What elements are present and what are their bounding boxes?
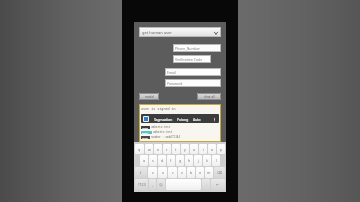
button[interactable]: model bbox=[139, 93, 159, 100]
staticText: g bbox=[179, 158, 182, 163]
staticText: w bbox=[148, 147, 151, 152]
button[interactable]: z bbox=[148, 167, 157, 178]
button[interactable]: h bbox=[185, 155, 193, 166]
button[interactable]: . bbox=[202, 179, 210, 190]
button[interactable]: ?123 bbox=[135, 179, 148, 190]
staticText: c bbox=[172, 170, 174, 175]
button[interactable]: Shift bbox=[135, 167, 147, 178]
staticText: Potong bbox=[177, 117, 189, 121]
button[interactable]: Potong bbox=[175, 116, 191, 122]
button[interactable]: clear all bbox=[197, 93, 221, 100]
staticText: e bbox=[157, 147, 160, 152]
button[interactable]: Inspect element bbox=[143, 116, 149, 122]
button[interactable]: q bbox=[135, 144, 144, 154]
staticText: Email bbox=[167, 70, 176, 75]
button[interactable]: get human user bbox=[139, 27, 221, 37]
staticText: z bbox=[152, 170, 154, 175]
staticText: clear all bbox=[204, 95, 215, 99]
staticText: umberto.test bbox=[151, 125, 171, 129]
button[interactable]: y bbox=[181, 144, 189, 154]
button[interactable]: p bbox=[217, 144, 225, 154]
staticText: y bbox=[184, 147, 186, 152]
staticText: umberto.test bbox=[153, 130, 173, 134]
staticText: Phone bbox=[142, 136, 149, 139]
staticText: , bbox=[152, 182, 153, 187]
staticText: ☺ bbox=[159, 183, 163, 187]
button[interactable]: c bbox=[168, 167, 177, 178]
button[interactable]: , bbox=[149, 179, 156, 190]
button[interactable]: u bbox=[190, 144, 198, 154]
staticText: ⌫ bbox=[217, 171, 223, 175]
button[interactable]: i bbox=[199, 144, 207, 154]
staticText: v bbox=[181, 170, 183, 175]
staticText: u bbox=[193, 147, 196, 152]
button[interactable]: n bbox=[196, 167, 204, 178]
button[interactable]: e bbox=[154, 144, 162, 154]
staticText: f bbox=[170, 158, 172, 163]
staticText: Verification Code bbox=[175, 57, 203, 62]
staticText: m bbox=[207, 170, 211, 175]
button[interactable]: m bbox=[205, 167, 213, 178]
button[interactable]: Emoji bbox=[157, 179, 165, 190]
staticText: d bbox=[161, 158, 164, 163]
staticText: h bbox=[188, 158, 191, 163]
button[interactable]: f bbox=[167, 155, 175, 166]
button[interactable]: g bbox=[176, 155, 184, 166]
staticText: j bbox=[198, 158, 199, 163]
staticText: k bbox=[206, 158, 208, 163]
button[interactable]: Backspace bbox=[214, 167, 225, 178]
staticText: x bbox=[162, 170, 164, 175]
staticText: p bbox=[220, 147, 223, 152]
staticText: b bbox=[190, 170, 193, 175]
staticText: get human user bbox=[142, 30, 172, 35]
button[interactable]: Space bbox=[166, 179, 201, 190]
staticText: n bbox=[199, 170, 202, 175]
button[interactable]: l bbox=[212, 155, 220, 166]
staticText: Phone_Number bbox=[175, 46, 200, 51]
staticText: Tagmaakan bbox=[154, 117, 173, 121]
button[interactable]: Verification Code bbox=[173, 55, 211, 63]
staticText: model bbox=[145, 95, 154, 99]
button[interactable]: j bbox=[194, 155, 202, 166]
staticText: i bbox=[203, 147, 204, 152]
button[interactable]: b bbox=[187, 167, 195, 178]
staticText: q bbox=[138, 147, 141, 152]
staticText: a bbox=[143, 158, 146, 163]
staticText: number : umb471344 bbox=[151, 135, 181, 139]
staticText: ↵ bbox=[216, 183, 220, 187]
staticText: user is signed in bbox=[141, 106, 176, 111]
staticText: Auto bbox=[193, 117, 201, 121]
staticText: o bbox=[211, 147, 214, 152]
button[interactable]: More options bbox=[211, 116, 217, 122]
staticText: ?123 bbox=[138, 182, 146, 187]
staticText: l bbox=[216, 158, 217, 163]
button[interactable]: Enter bbox=[211, 179, 225, 190]
button[interactable]: Password bbox=[165, 79, 221, 87]
button[interactable]: k bbox=[203, 155, 211, 166]
button[interactable]: Email bbox=[165, 68, 221, 76]
button[interactable]: Phone_Number bbox=[173, 44, 221, 52]
button[interactable]: o bbox=[208, 144, 216, 154]
button[interactable]: v bbox=[178, 167, 186, 178]
button[interactable]: x bbox=[158, 167, 167, 178]
staticText: . bbox=[206, 182, 207, 187]
staticText: ⇧ bbox=[139, 171, 143, 175]
button[interactable]: r bbox=[163, 144, 171, 154]
button[interactable]: d bbox=[158, 155, 166, 166]
staticText: t bbox=[175, 147, 177, 152]
button[interactable]: t bbox=[172, 144, 180, 154]
staticText: s bbox=[152, 158, 154, 163]
button[interactable]: w bbox=[145, 144, 153, 154]
staticText: r bbox=[166, 147, 168, 152]
button[interactable]: a bbox=[140, 155, 148, 166]
button[interactable]: Tagmaakan bbox=[152, 116, 175, 122]
button[interactable]: s bbox=[149, 155, 157, 166]
button[interactable]: Auto bbox=[191, 116, 203, 122]
staticText: name bbox=[142, 126, 149, 129]
staticText: Password bbox=[167, 81, 183, 86]
staticText: Emai bbox=[142, 131, 149, 134]
